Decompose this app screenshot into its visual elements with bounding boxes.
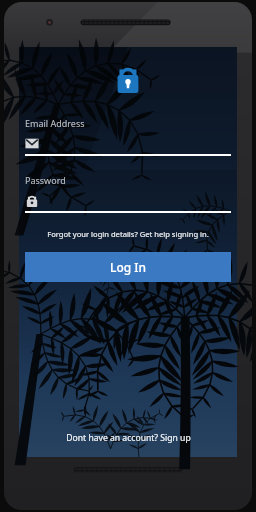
button[interactable]: Forgot your login details? Get help sign… xyxy=(19,226,237,242)
staticText: Password xyxy=(25,174,66,186)
staticText: Log In xyxy=(110,259,147,275)
staticText: Dont have an account? Sign up xyxy=(66,432,191,444)
button[interactable]: Dont have an account? Sign up xyxy=(19,427,237,449)
button[interactable]: Email Address field xyxy=(25,117,231,156)
staticText: Email Address xyxy=(25,117,85,129)
staticText: Forgot your login details? Get help sign… xyxy=(47,229,209,239)
button[interactable]: Password field xyxy=(25,174,231,213)
button[interactable]: Log In xyxy=(25,252,231,282)
